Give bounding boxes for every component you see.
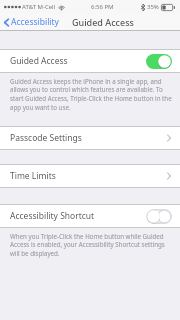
staticText: When you Triple-Click the Home button wh… [10,232,172,258]
staticText: Passcode Settings [10,132,82,144]
staticText: 35% [147,3,159,11]
button[interactable]: Accessibility [0,15,61,29]
button[interactable]: Guided Access [0,50,180,72]
button[interactable]: Time Limits [0,165,180,187]
staticText: Accessibility [11,16,59,28]
staticText: Guided Access keeps the iPhone in a sing… [10,77,172,112]
button[interactable]: Toggle off [146,209,172,224]
staticText: Accessibility Shortcut [10,210,95,222]
staticText: Guided Access [72,16,134,28]
staticText: Guided Access [10,55,68,67]
button[interactable]: Toggle on [146,54,172,69]
button[interactable]: Passcode Settings [0,127,180,149]
button[interactable]: Accessibility Shortcut [0,205,180,227]
staticText: AT&T M-Cell [22,3,56,11]
staticText: 6:56 PM [91,3,114,11]
staticText: Time Limits [10,170,56,182]
